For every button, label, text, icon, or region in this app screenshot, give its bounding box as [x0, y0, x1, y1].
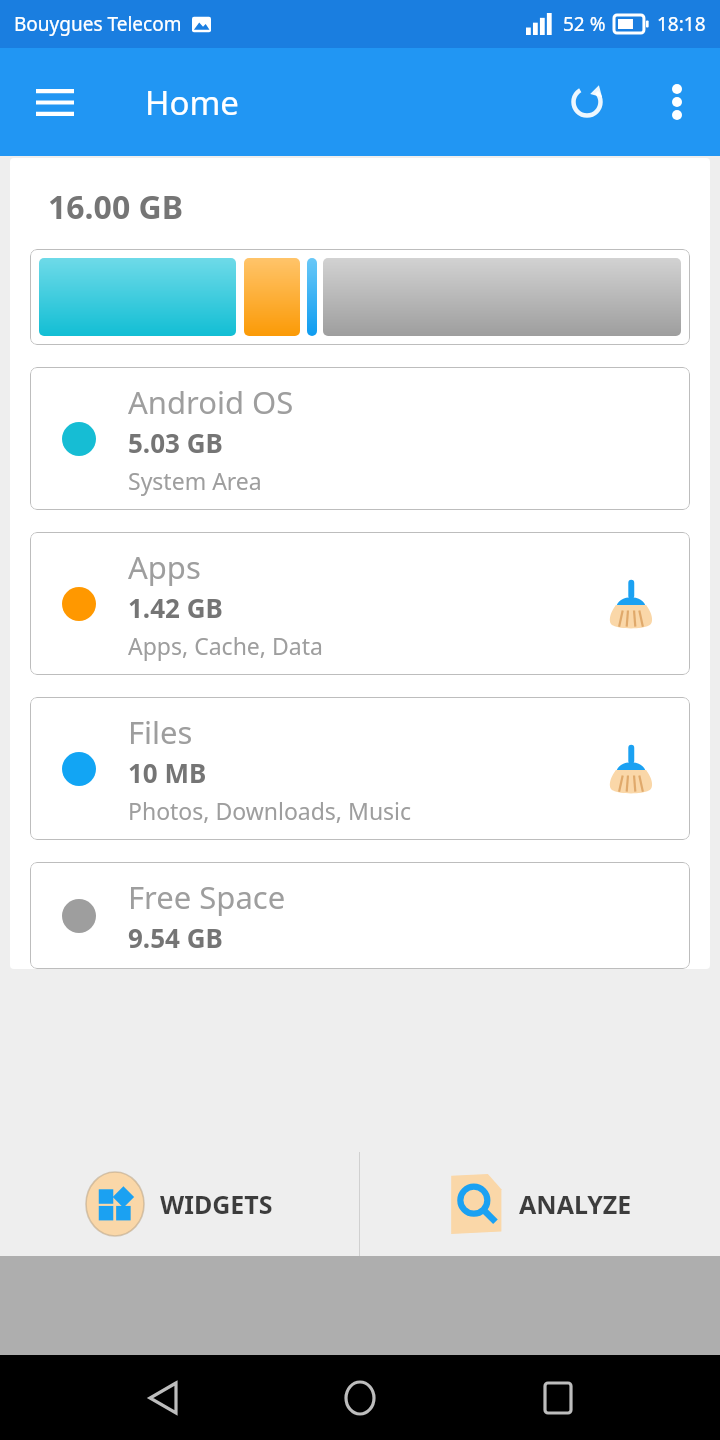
button[interactable]: Refresh [556, 71, 618, 133]
staticText: Photos, Downloads, Music [128, 795, 412, 826]
button[interactable]: Clean Apps [600, 573, 662, 635]
button[interactable]: Free Space [30, 862, 690, 969]
button[interactable]: Recent apps [523, 1363, 593, 1433]
button[interactable]: More options [648, 73, 706, 131]
button[interactable]: Files [30, 697, 690, 840]
staticText: 5.03 GB [128, 425, 223, 460]
button[interactable]: Open navigation menu [22, 69, 88, 135]
button[interactable]: WIDGETS [0, 1152, 359, 1256]
staticText: 9.54 GB [128, 920, 223, 955]
staticText: 18:18 [657, 11, 706, 37]
button[interactable]: Home [325, 1363, 395, 1433]
button[interactable]: Apps [30, 532, 690, 675]
staticText: Home [145, 80, 239, 125]
staticText: System Area [128, 465, 262, 496]
staticText: Files [128, 711, 193, 753]
staticText: Bouygues Telecom [14, 11, 182, 37]
button[interactable]: ANALYZE [360, 1152, 720, 1256]
button[interactable]: Clean Files [600, 738, 662, 800]
staticText: Free Space [128, 876, 286, 918]
staticText: ANALYZE [519, 1187, 632, 1221]
button[interactable]: Back [128, 1363, 198, 1433]
staticText: 52 % [563, 11, 606, 37]
staticText: WIDGETS [160, 1187, 273, 1221]
staticText: 10 MB [128, 755, 207, 790]
staticText: Android OS [128, 381, 294, 423]
staticText: 1.42 GB [128, 590, 223, 625]
staticText: 16.00 GB [48, 185, 183, 229]
staticText: Apps [128, 546, 201, 588]
button[interactable]: Android OS [30, 367, 690, 510]
staticText: Apps, Cache, Data [128, 630, 323, 661]
